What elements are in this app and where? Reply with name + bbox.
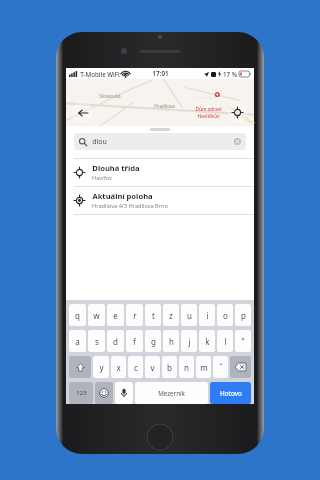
staticText: t [152,310,155,321]
staticText: f [133,336,136,347]
staticText: Aktuální poloha [92,191,153,201]
staticText: c [134,362,138,373]
button[interactable]: Aktuální poloha [66,187,254,214]
button[interactable]: Shift [69,356,91,378]
button[interactable]: p [235,304,251,326]
button[interactable]: Mezerník [135,382,208,404]
staticText: g [151,336,156,347]
staticText: Havířov [92,174,112,182]
button[interactable] [115,382,133,404]
button[interactable]: Back [72,102,93,123]
staticText: Hradilova [154,103,175,109]
staticText: 123 [76,389,87,397]
staticText: 17 % [223,70,237,78]
button[interactable]: s [88,330,105,352]
staticText: w [93,310,100,321]
staticText: T-Mobile WiFi [80,70,120,78]
button[interactable]: w [88,304,105,326]
staticText: Hradilova 4/3 Hradilova Brno [92,202,168,210]
button[interactable]: Home [146,423,174,451]
button[interactable]: a [69,330,86,352]
staticText: r [133,310,137,321]
staticText: a [75,336,80,347]
button[interactable]: c [128,356,143,378]
button[interactable]: " [235,330,251,352]
staticText: Hotovo [220,389,242,398]
staticText: z [169,310,173,321]
staticText: d [113,336,118,347]
button[interactable]: h [163,330,179,352]
button[interactable]: z [163,304,179,326]
button[interactable]: i [199,304,215,326]
staticText: v [150,362,155,373]
staticText: dlou [92,137,107,147]
button[interactable]: x [111,356,126,378]
button[interactable]: Hotovo [210,382,251,404]
button[interactable]: d [107,330,124,352]
button[interactable]: dlou [74,133,246,150]
button[interactable]: Emoji [95,382,113,404]
button[interactable]: y [93,356,109,378]
button[interactable]: u [181,304,197,326]
staticText: " [241,336,245,347]
staticText: q [75,310,80,321]
button[interactable]: k [199,330,215,352]
button[interactable]: r [126,304,143,326]
button[interactable]: e [107,304,124,326]
button[interactable]: My location [227,102,248,123]
button[interactable]: f [126,330,143,352]
staticText: h [169,336,174,347]
staticText: n [184,362,189,373]
staticText: b [167,362,172,373]
staticText: Dlouhá třída [92,163,140,173]
staticText: e [113,310,118,321]
staticText: m [200,362,208,373]
staticText: l [224,336,227,347]
button[interactable]: m [196,356,211,378]
staticText: Havlíčkův [197,113,220,120]
staticText: x [116,362,121,373]
button[interactable]: b [162,356,177,378]
staticText: j [188,336,191,347]
button[interactable]: t [145,304,161,326]
staticText: k [205,336,210,347]
staticText: Slovanská [99,93,121,99]
staticText: Mezerník [158,389,185,397]
button[interactable]: ˇ [213,356,228,378]
button[interactable]: Dlouhá třída [66,159,254,186]
staticText: y [99,362,104,373]
button[interactable]: q [69,304,86,326]
staticText: i [206,310,209,321]
button[interactable]: l [217,330,233,352]
staticText: p [241,310,246,321]
button[interactable]: v [145,356,160,378]
staticText: 17:01 [152,69,169,78]
button[interactable]: Numbers [69,382,93,404]
staticText: s [95,336,99,347]
button[interactable]: Backspace [230,356,251,378]
button[interactable]: o [217,304,233,326]
staticText: ˇ [219,362,223,373]
button[interactable]: n [179,356,194,378]
button[interactable]: g [145,330,161,352]
button[interactable]: j [181,330,197,352]
staticText: u [187,310,192,321]
staticText: o [223,310,228,321]
staticText: Dům zdraví [195,106,222,113]
